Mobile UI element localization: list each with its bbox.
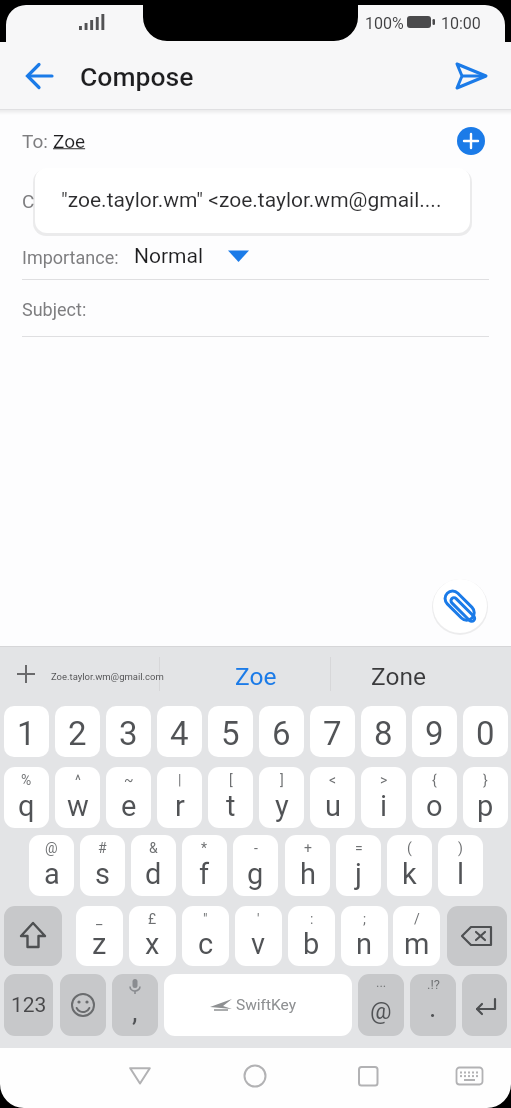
staticText: m: [404, 927, 430, 961]
staticText: .!?: [427, 977, 440, 992]
button[interactable]: 3: [106, 706, 151, 757]
button[interactable]: 6: [259, 706, 304, 757]
staticText: 4: [170, 714, 189, 753]
button[interactable]: [60, 974, 106, 1036]
staticText: ...: [376, 975, 387, 990]
staticText: d: [145, 857, 162, 891]
button[interactable]: 2: [55, 706, 100, 757]
staticText: :: [310, 911, 314, 927]
button[interactable]: #: [80, 835, 125, 896]
button[interactable]: Zoe: [171, 649, 341, 703]
button[interactable]: ]: [259, 767, 304, 828]
button[interactable]: 1: [4, 706, 49, 757]
button[interactable]: [118, 1054, 164, 1100]
button[interactable]: [440, 52, 500, 100]
staticText: (: [407, 840, 412, 856]
staticText: 100%: [365, 14, 404, 33]
button[interactable]: [447, 906, 507, 966]
button[interactable]: *: [182, 835, 227, 896]
staticText: s: [95, 857, 110, 891]
button[interactable]: ~: [106, 767, 151, 828]
button[interactable]: &: [131, 835, 176, 896]
button[interactable]: [433, 579, 487, 633]
button[interactable]: -: [233, 835, 278, 896]
button[interactable]: [14, 52, 64, 100]
staticText: Zoe.taylor.wm@gmail.com: [51, 671, 164, 682]
button[interactable]: [457, 127, 485, 155]
button[interactable]: ': [235, 906, 282, 966]
staticText: ~: [124, 772, 134, 788]
button[interactable]: 4: [157, 706, 202, 757]
staticText: SwiftKey: [236, 996, 297, 1014]
staticText: q: [18, 789, 35, 823]
staticText: |: [178, 772, 182, 788]
button[interactable]: ): [438, 835, 483, 896]
staticText: {: [432, 772, 437, 788]
button[interactable]: [0, 236, 511, 280]
staticText: j: [355, 857, 362, 891]
button[interactable]: £: [129, 906, 176, 966]
button[interactable]: 8: [361, 706, 406, 757]
button[interactable]: "zoe.taylor.wm" <zoe.taylor.wm@gmail....: [35, 168, 470, 233]
staticText: a: [44, 857, 60, 891]
staticText: /: [414, 911, 420, 927]
staticText: Normal: [134, 244, 204, 269]
button[interactable]: /: [393, 906, 440, 966]
staticText: @: [370, 997, 392, 1025]
button[interactable]: |: [157, 767, 202, 828]
staticText: .: [429, 991, 437, 1024]
button[interactable]: 9: [412, 706, 457, 757]
button[interactable]: .!?: [410, 974, 456, 1036]
button[interactable]: 7: [310, 706, 355, 757]
staticText: b: [303, 927, 320, 961]
staticText: To:: [22, 130, 48, 152]
staticText: #: [98, 840, 107, 856]
staticText: Importance:: [22, 247, 119, 268]
staticText: y: [275, 789, 289, 823]
staticText: 6: [272, 714, 291, 753]
button[interactable]: [: [208, 767, 253, 828]
button[interactable]: Zone: [331, 649, 466, 703]
staticText: g: [247, 857, 264, 891]
button[interactable]: [448, 1054, 494, 1100]
button[interactable]: 123: [4, 974, 53, 1036]
staticText: ': [257, 911, 260, 927]
button[interactable]: (: [387, 835, 432, 896]
button[interactable]: ,: [112, 974, 158, 1036]
button[interactable]: [462, 974, 507, 1036]
staticText: Compose: [80, 61, 194, 92]
button[interactable]: 5: [208, 706, 253, 757]
button[interactable]: [4, 906, 62, 966]
button[interactable]: _: [76, 906, 123, 966]
staticText: i: [380, 789, 388, 823]
button[interactable]: ": [182, 906, 229, 966]
button[interactable]: ^: [55, 767, 100, 828]
staticText: h: [300, 857, 316, 891]
button[interactable]: =: [336, 835, 381, 896]
button[interactable]: +: [285, 835, 330, 896]
staticText: ,: [132, 995, 138, 1028]
staticText: 1: [17, 714, 36, 753]
staticText: Subject:: [22, 299, 87, 320]
staticText: v: [251, 927, 266, 961]
button[interactable]: ;: [341, 906, 388, 966]
button[interactable]: @: [29, 835, 74, 896]
button[interactable]: Zoe.taylor.wm@gmail.com: [50, 649, 165, 703]
button[interactable]: [232, 1054, 278, 1100]
button[interactable]: {: [412, 767, 457, 828]
staticText: o: [426, 789, 443, 823]
button[interactable]: }: [463, 767, 508, 828]
button[interactable]: SwiftKey: [164, 974, 352, 1036]
staticText: 3: [119, 714, 138, 753]
button[interactable]: [345, 1054, 391, 1100]
button[interactable]: [0, 282, 511, 336]
staticText: p: [477, 789, 494, 823]
button[interactable]: >: [361, 767, 406, 828]
button[interactable]: <: [310, 767, 355, 828]
button[interactable]: :: [288, 906, 335, 966]
button[interactable]: %: [4, 767, 49, 828]
button[interactable]: ...: [358, 974, 404, 1036]
staticText: <: [329, 772, 337, 788]
button[interactable]: [0, 112, 511, 170]
button[interactable]: 0: [463, 706, 508, 757]
